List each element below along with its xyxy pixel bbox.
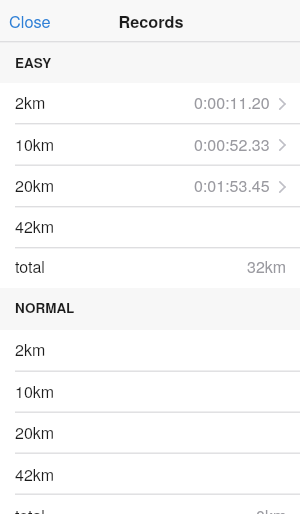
staticText: 0:00:11.20 xyxy=(194,91,270,114)
staticText: 2km xyxy=(15,338,46,361)
button[interactable]: 42km xyxy=(0,206,300,247)
staticText: Records xyxy=(118,10,184,33)
staticText: 42km xyxy=(15,463,55,486)
button[interactable]: total xyxy=(0,494,300,514)
button[interactable]: 10km xyxy=(0,124,300,166)
button[interactable]: total xyxy=(0,247,300,288)
staticText: NORMAL xyxy=(15,298,75,317)
staticText: 20km xyxy=(15,421,55,444)
staticText: 42km xyxy=(15,215,55,238)
staticText: 2km xyxy=(15,91,46,114)
staticText: 32km xyxy=(247,255,287,278)
button[interactable]: 2km xyxy=(0,330,300,371)
button[interactable]: 20km xyxy=(0,165,300,206)
button[interactable]: Close xyxy=(0,0,63,41)
staticText: EASY xyxy=(15,53,52,72)
staticText: 20km xyxy=(15,174,55,197)
button[interactable]: 20km xyxy=(0,412,300,453)
staticText: 10km xyxy=(15,133,55,156)
staticText: total xyxy=(15,255,45,278)
staticText: 10km xyxy=(15,380,55,403)
staticText: Close xyxy=(9,9,51,32)
button[interactable]: 10km xyxy=(0,371,300,412)
staticText: total xyxy=(15,504,45,514)
button[interactable]: 2km xyxy=(0,83,300,124)
staticText: 0:01:53.45 xyxy=(194,174,270,197)
staticText: 0km xyxy=(256,504,287,514)
staticText: 0:00:52.33 xyxy=(194,133,270,156)
button[interactable]: 42km xyxy=(0,453,300,494)
